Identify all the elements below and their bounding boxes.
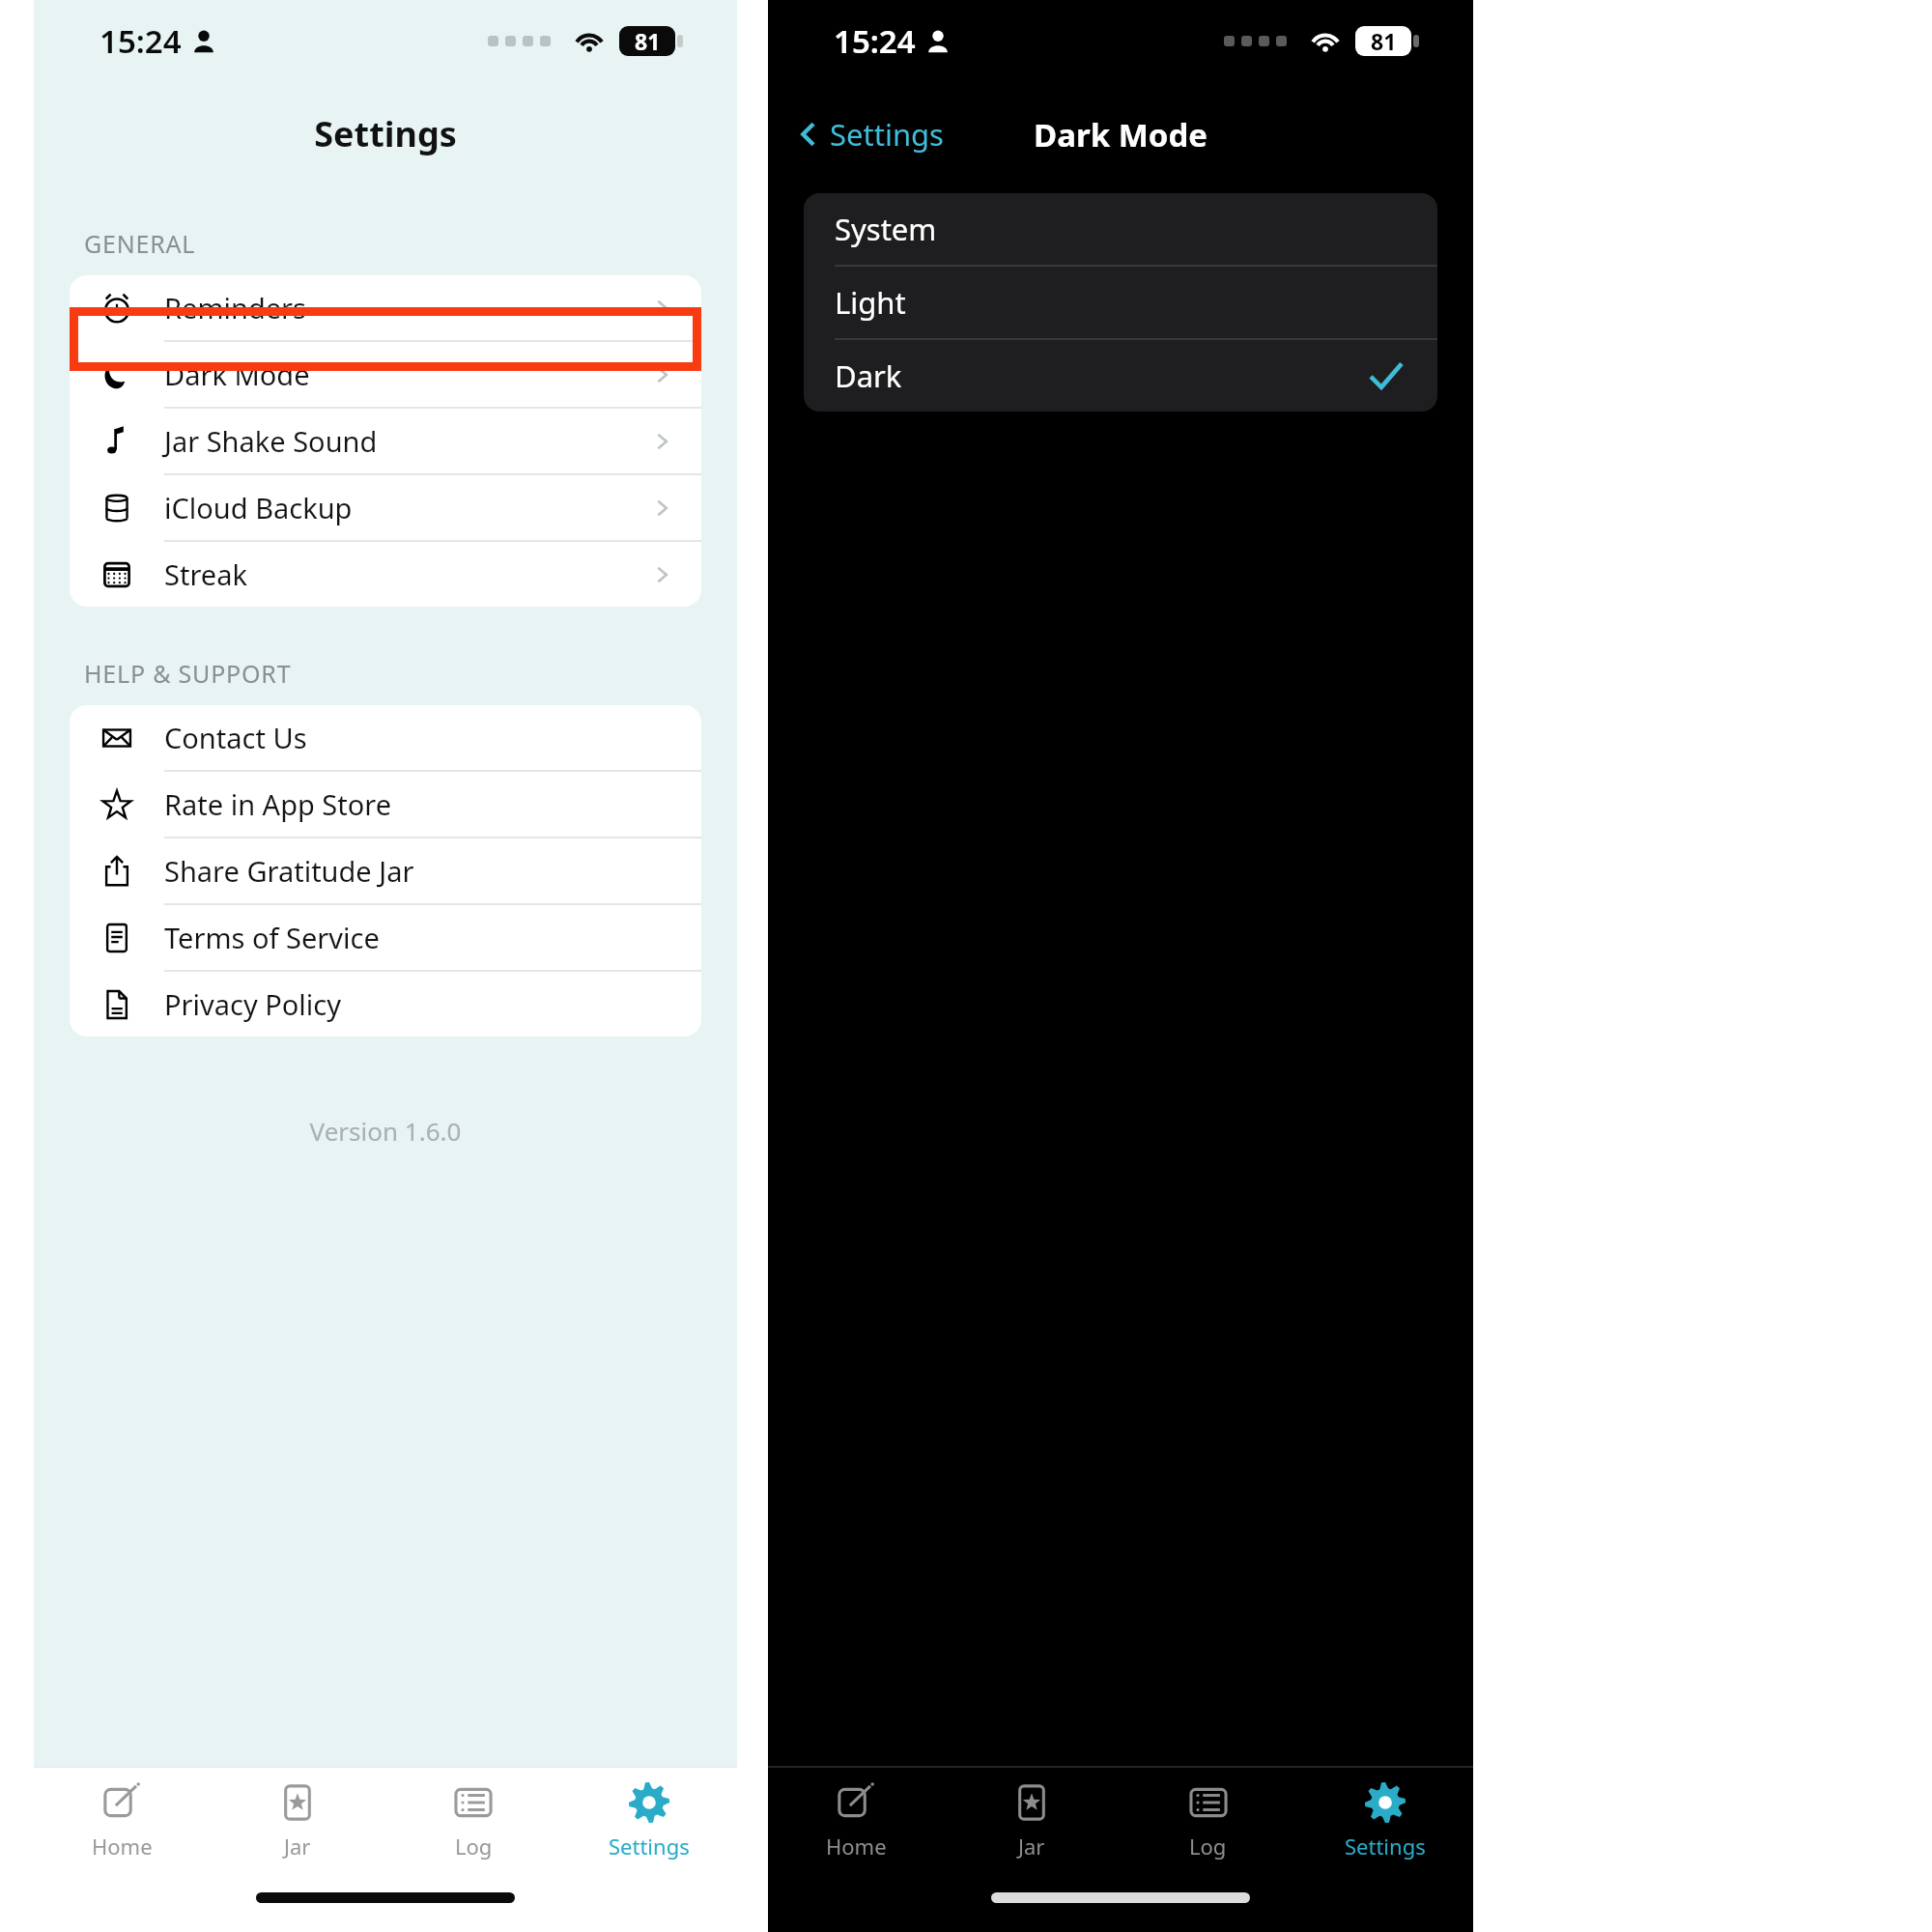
button[interactable]: Rate in App Store [70, 772, 701, 838]
staticText: Settings [34, 110, 737, 157]
staticText: Settings [609, 1832, 690, 1861]
staticText: Settings [830, 114, 944, 155]
button[interactable]: Home [768, 1768, 944, 1874]
button[interactable]: Share Gratitude Jar [70, 838, 701, 905]
staticText: Version 1.6.0 [34, 1114, 737, 1148]
staticText: Jar [1018, 1832, 1045, 1861]
button[interactable]: Contact Us [70, 705, 701, 772]
staticText: Contact Us [164, 719, 307, 756]
staticText: GENERAL [84, 227, 196, 260]
button[interactable]: iCloud Backup [70, 475, 701, 542]
staticText: HELP & SUPPORT [84, 657, 292, 690]
button[interactable]: Jar [944, 1768, 1120, 1874]
staticText: 15:24 [834, 19, 916, 63]
button[interactable]: Home [34, 1768, 210, 1874]
staticText: 81 [635, 26, 661, 56]
staticText: System [835, 209, 1406, 249]
button[interactable]: Reminders [70, 275, 701, 342]
staticText: Reminders [164, 289, 306, 327]
staticText: Settings [1345, 1832, 1426, 1861]
staticText: Dark [835, 355, 1366, 396]
button[interactable]: Settings [791, 114, 944, 155]
staticText: Dark Mode [164, 355, 310, 393]
staticText: 15:24 [99, 19, 182, 63]
staticText: Dark Mode [1034, 113, 1208, 156]
button[interactable]: Dark Mode [70, 342, 701, 409]
staticText: Share Gratitude Jar [164, 852, 414, 890]
button[interactable]: Settings [1296, 1768, 1473, 1874]
staticText: 81 [1371, 26, 1397, 56]
button[interactable]: Jar [210, 1768, 385, 1874]
staticText: Streak [164, 555, 247, 593]
staticText: Rate in App Store [164, 785, 392, 823]
button[interactable]: Settings [561, 1768, 737, 1874]
button[interactable]: Dark [804, 340, 1437, 412]
staticText: Home [92, 1832, 153, 1861]
button[interactable]: System [804, 193, 1437, 267]
button[interactable]: Streak [70, 542, 701, 607]
staticText: Log [455, 1832, 493, 1861]
staticText: Terms of Service [164, 919, 380, 956]
staticText: Privacy Policy [164, 985, 342, 1023]
button[interactable]: Log [385, 1768, 561, 1874]
button[interactable]: Privacy Policy [70, 972, 701, 1037]
staticText: Jar [284, 1832, 311, 1861]
staticText: iCloud Backup [164, 489, 353, 526]
staticText: Home [826, 1832, 887, 1861]
button[interactable]: Log [1120, 1768, 1296, 1874]
button[interactable]: Jar Shake Sound [70, 409, 701, 475]
staticText: Jar Shake Sound [164, 422, 378, 460]
staticText: Log [1189, 1832, 1227, 1861]
button[interactable]: Light [804, 267, 1437, 340]
button[interactable]: Terms of Service [70, 905, 701, 972]
staticText: Light [835, 282, 1406, 323]
